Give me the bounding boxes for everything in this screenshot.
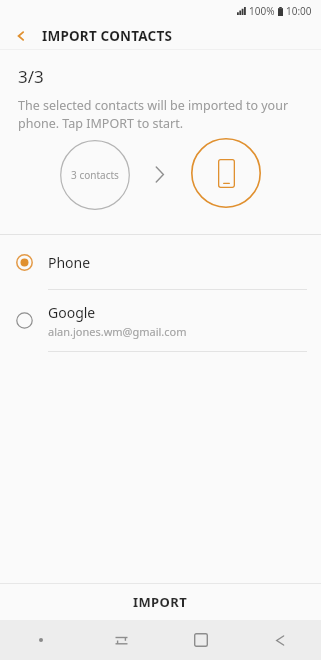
staticText: Google bbox=[48, 303, 96, 322]
button[interactable]: Phone bbox=[0, 235, 321, 289]
staticText: IMPORT CONTACTS bbox=[42, 27, 173, 45]
button[interactable]: Indicator bbox=[0, 620, 81, 660]
button[interactable]: IMPORT bbox=[0, 584, 321, 620]
staticText: The selected contacts will be imported t… bbox=[18, 97, 297, 132]
button[interactable]: Recents bbox=[81, 620, 161, 660]
staticText: alan.jones.wm@gmail.com bbox=[48, 324, 187, 339]
staticText: Phone bbox=[48, 253, 91, 272]
staticText: IMPORT bbox=[133, 593, 188, 611]
button[interactable]: Back bbox=[0, 22, 42, 49]
staticText: 3 contacts bbox=[71, 168, 119, 182]
button[interactable]: Home bbox=[161, 620, 241, 660]
button[interactable]: Back bbox=[241, 620, 321, 660]
staticText: 3/3 bbox=[18, 65, 44, 88]
staticText: 100% bbox=[249, 4, 275, 18]
staticText: 10:00 bbox=[286, 4, 312, 18]
button[interactable]: Google bbox=[0, 290, 321, 351]
